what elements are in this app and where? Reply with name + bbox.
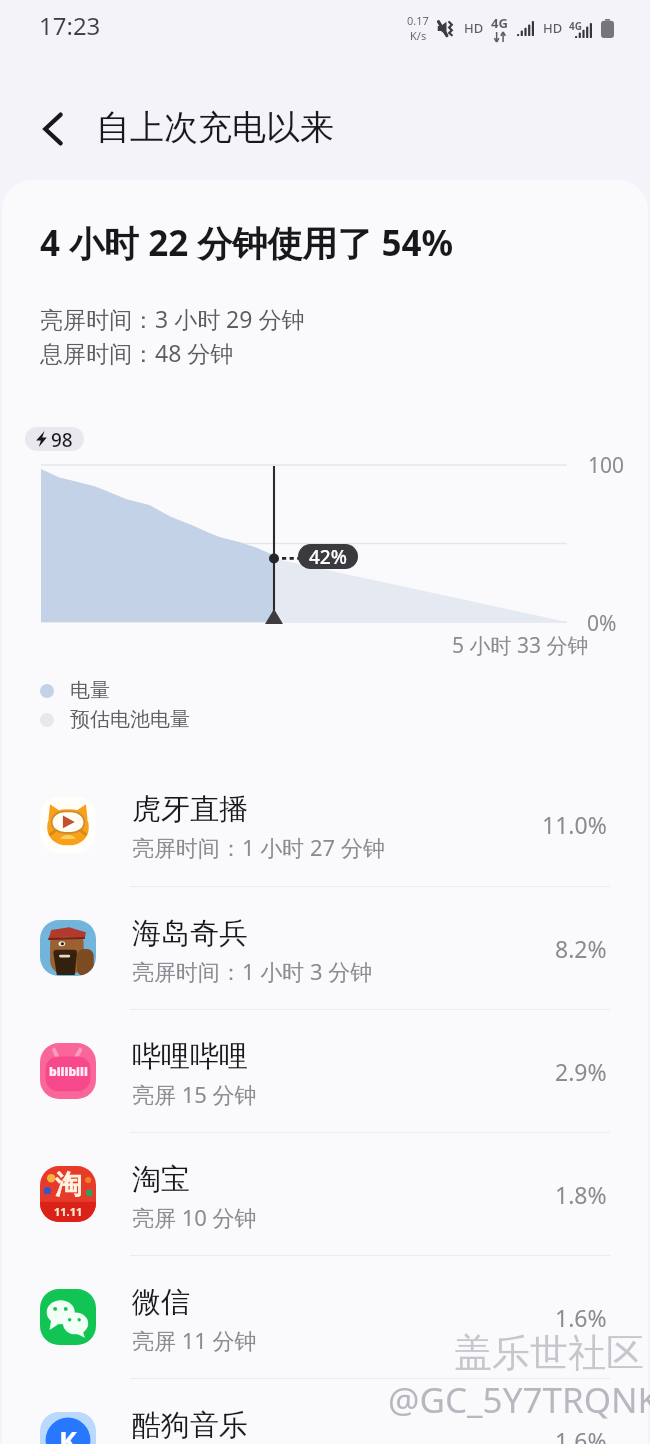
staticText: 哔哩哔哩 xyxy=(132,1038,248,1075)
staticText: 11.11 xyxy=(54,1204,83,1219)
button[interactable]: 虎牙直播 xyxy=(0,763,650,886)
button[interactable]: K xyxy=(0,1379,650,1444)
staticText: bilibili xyxy=(49,1063,88,1079)
staticText: 5 小时 33 分钟 xyxy=(452,631,589,660)
staticText: 息屏时间：48 分钟 xyxy=(40,337,234,368)
staticText: 微信 xyxy=(132,1284,190,1321)
staticText: 亮屏时间：3 小时 29 分钟 xyxy=(40,303,305,334)
staticText: 4G xyxy=(569,19,582,33)
staticText: 盖乐世社区 xyxy=(454,1329,644,1377)
staticText: 11.0% xyxy=(542,809,607,840)
staticText: 42% xyxy=(309,544,347,569)
button[interactable]: bilibili xyxy=(0,1010,650,1132)
staticText: 0% xyxy=(587,609,617,638)
staticText: 亮屏时间：1 小时 27 分钟 xyxy=(132,832,385,862)
staticText: 淘宝 xyxy=(132,1161,190,1198)
staticText: HD xyxy=(543,19,563,37)
staticText: 4 小时 22 分钟使用了 54% xyxy=(40,219,454,267)
button[interactable]: 微信 xyxy=(0,1256,650,1378)
staticText: 虎牙直播 xyxy=(132,791,248,828)
button[interactable]: 淘 xyxy=(0,1133,650,1255)
staticText: K/s xyxy=(410,28,427,43)
staticText: 17:23 xyxy=(39,9,101,42)
staticText: 100 xyxy=(588,451,625,480)
staticText: 电量 xyxy=(70,678,110,703)
staticText: 海岛奇兵 xyxy=(132,915,248,952)
staticText: 酷狗音乐 xyxy=(132,1407,248,1444)
staticText: 0.17 xyxy=(407,13,429,28)
staticText: 8.2% xyxy=(555,933,607,964)
staticText: 亮屏 10 分钟 xyxy=(132,1202,257,1232)
staticText: 淘 xyxy=(55,1168,82,1202)
staticText: HD xyxy=(464,19,484,37)
staticText: 1.6% xyxy=(555,1302,607,1333)
button[interactable]: 海岛奇兵 xyxy=(0,887,650,1009)
staticText: 2.9% xyxy=(555,1056,607,1087)
staticText: 亮屏 15 分钟 xyxy=(132,1079,257,1109)
staticText: 亮屏 11 分钟 xyxy=(132,1325,257,1355)
staticText: 自上次充电以来 xyxy=(96,106,334,149)
staticText: 1.8% xyxy=(555,1179,607,1210)
button[interactable]: Back xyxy=(26,103,78,155)
staticText: 1.6% xyxy=(555,1425,607,1444)
staticText: 4G xyxy=(491,14,508,32)
staticText: @GC_5Y7TRQNK xyxy=(388,1376,650,1424)
staticText: 98 xyxy=(51,427,73,451)
staticText: 亮屏时间：1 小时 3 分钟 xyxy=(132,956,373,986)
staticText: 预估电池电量 xyxy=(70,707,190,732)
staticText: K xyxy=(59,1422,77,1444)
